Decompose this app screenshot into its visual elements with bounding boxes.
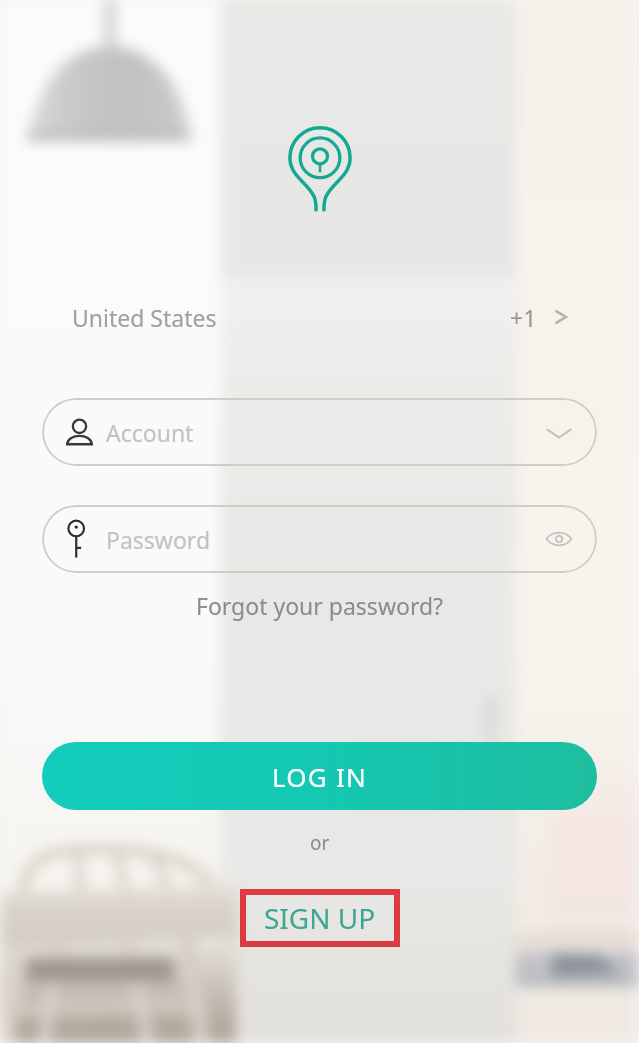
- staticText: Forgot your password?: [196, 590, 444, 621]
- staticText: or: [310, 830, 330, 856]
- other: App logo: [288, 126, 352, 212]
- staticText: +1: [510, 302, 537, 333]
- button[interactable]: LOG IN: [42, 742, 597, 810]
- staticText: SIGN UP: [264, 899, 376, 937]
- staticText: Password: [106, 524, 211, 555]
- staticText: Account: [106, 417, 194, 448]
- button[interactable]: Account: [42, 398, 597, 466]
- button[interactable]: SIGN UP: [240, 889, 400, 947]
- button[interactable]: Password: [42, 505, 597, 573]
- staticText: United States: [72, 302, 217, 333]
- button[interactable]: United States: [0, 292, 639, 342]
- button[interactable]: Forgot your password?: [190, 588, 450, 623]
- button[interactable]: Choose account: [535, 408, 583, 456]
- button[interactable]: Show password: [535, 515, 583, 563]
- staticText: LOG IN: [272, 759, 367, 794]
